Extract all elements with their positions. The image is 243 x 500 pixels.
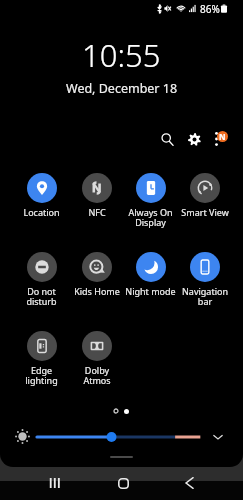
staticText: Dolby Atmos <box>83 364 111 387</box>
button[interactable]: Navigation bar <box>177 250 232 308</box>
button[interactable]: NFC <box>69 171 124 218</box>
button[interactable]: Edge lighting <box>14 329 69 387</box>
staticText: Location <box>23 206 60 218</box>
button[interactable]: Home <box>109 469 137 497</box>
button[interactable]: Settings <box>183 128 205 150</box>
button[interactable]: Search <box>156 128 178 150</box>
button[interactable]: Night mode <box>123 250 178 297</box>
staticText: 10:55 <box>82 34 161 76</box>
staticText: Always On Display <box>128 206 173 229</box>
staticText: N <box>219 131 226 142</box>
staticText: Navigation bar <box>182 285 228 308</box>
button[interactable]: Recents <box>40 469 68 497</box>
button[interactable]: Always On Display <box>123 171 178 229</box>
staticText: Edge lighting <box>25 364 58 387</box>
button[interactable]: Back <box>175 469 203 497</box>
staticText: Kids Home <box>74 285 120 297</box>
button[interactable]: Do not disturb <box>14 250 69 308</box>
button[interactable]: Smart View <box>177 171 232 218</box>
button[interactable]: Kids Home <box>69 250 124 297</box>
staticText: Wed, December 18 <box>66 80 178 97</box>
button[interactable]: Location <box>14 171 69 218</box>
button[interactable]: More options <box>211 128 233 150</box>
staticText: Do not disturb <box>26 285 57 308</box>
staticText: NFC <box>88 206 106 218</box>
staticText: Smart View <box>181 206 229 218</box>
staticText: 86% <box>200 2 220 16</box>
button[interactable]: Dolby Atmos <box>69 329 124 387</box>
staticText: Night mode <box>125 285 176 297</box>
button[interactable]: Brightness <box>36 429 202 445</box>
button[interactable]: Expand brightness settings <box>209 428 227 446</box>
